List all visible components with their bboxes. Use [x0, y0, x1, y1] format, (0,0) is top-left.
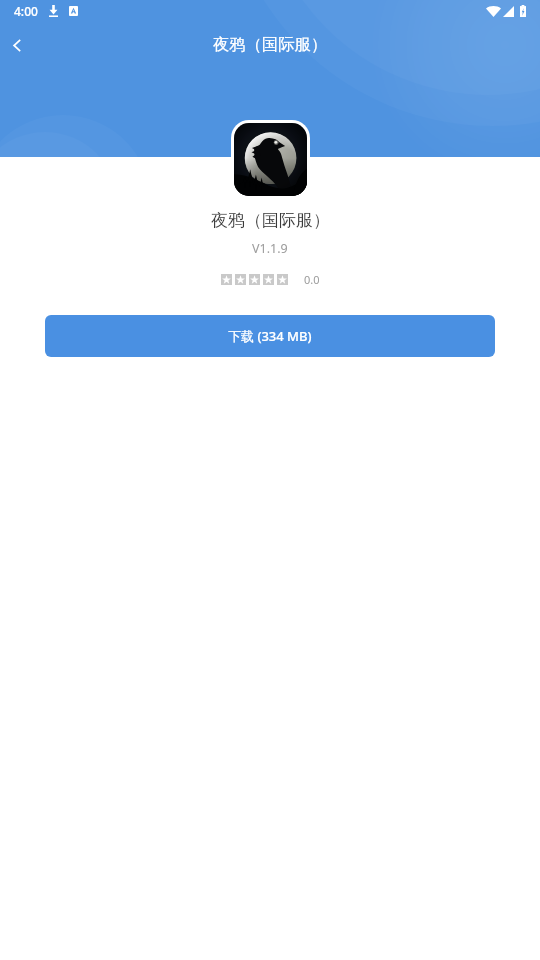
button[interactable]: Back — [0, 25, 34, 63]
staticText: 夜鸦（国际服） — [213, 34, 328, 55]
staticText: V1.1.9 — [252, 240, 288, 257]
staticText: 0.0 — [304, 272, 320, 287]
staticText: 下载 (334 MB) — [228, 327, 312, 345]
button[interactable]: 下载 (334 MB) — [45, 315, 495, 357]
staticText: 4:00 — [14, 3, 38, 19]
staticText: 夜鸦（国际服） — [211, 210, 330, 231]
